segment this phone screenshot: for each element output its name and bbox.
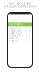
staticText: December — [9, 23, 23, 26]
staticText: precision control tools — [4, 5, 36, 8]
button[interactable]: Wed 04 — [8, 32, 32, 35]
button[interactable]: Tue 03 — [8, 30, 32, 32]
staticText: Tue 03 — [11, 29, 21, 33]
staticText: 9.1 — [26, 39, 31, 42]
staticText: Fri 06 — [11, 36, 19, 40]
staticText: 8.5 — [26, 32, 31, 35]
staticText: Run, speed and — [8, 2, 31, 5]
button[interactable]: Thu 05 — [8, 35, 32, 37]
staticText: Wed 04 — [11, 32, 22, 35]
button[interactable]: Sat 07 — [8, 39, 32, 42]
staticText: 7.3 — [26, 36, 31, 40]
staticText: Mon 02 — [11, 27, 22, 30]
button[interactable]: Fri 06 — [8, 37, 32, 39]
button[interactable]: Mon 02 — [8, 27, 32, 30]
staticText: 7.4 — [26, 29, 31, 33]
staticText: Sat 07 — [11, 39, 19, 42]
staticText: Thu 05 — [11, 34, 21, 37]
staticText: 8.0 — [26, 34, 31, 37]
staticText: 8.2 — [26, 27, 31, 30]
